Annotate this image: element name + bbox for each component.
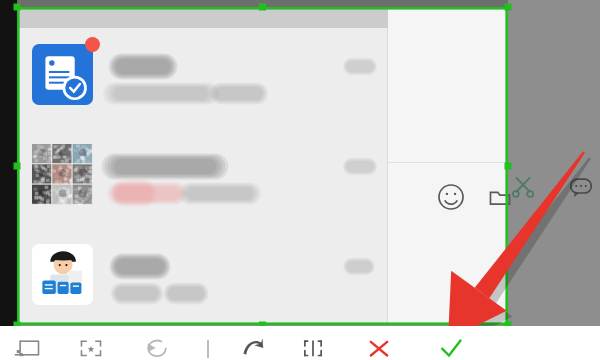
button[interactable]: Chat <box>566 172 596 202</box>
button[interactable]: Screenshot <box>508 170 538 200</box>
button[interactable]: Emoji <box>436 182 466 212</box>
button[interactable]: Crop <box>296 331 330 360</box>
button[interactable]: Confirm <box>434 331 468 360</box>
button[interactable]: Redo <box>236 331 270 360</box>
button[interactable]: Text recognition <box>74 331 108 360</box>
button[interactable]: Undo <box>140 331 174 360</box>
button[interactable] <box>17 236 388 336</box>
button[interactable] <box>17 136 388 236</box>
button[interactable]: Cancel <box>362 331 396 360</box>
button[interactable]: Mosaic <box>12 331 46 360</box>
button[interactable] <box>17 36 388 136</box>
button[interactable]: Files <box>486 184 514 212</box>
